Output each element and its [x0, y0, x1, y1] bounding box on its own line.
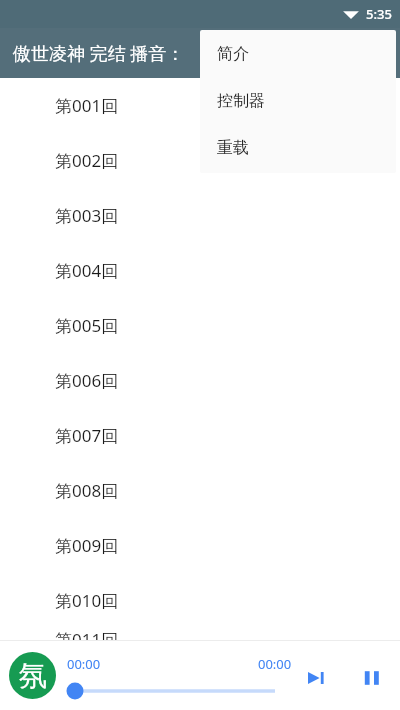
staticText: 第006回 — [55, 369, 119, 392]
button[interactable]: 第008回 — [0, 463, 400, 518]
button[interactable]: 第003回 — [0, 188, 400, 243]
button[interactable]: Next track — [296, 658, 336, 698]
button[interactable]: 简介 — [200, 30, 396, 77]
staticText: 第008回 — [55, 479, 119, 502]
staticText: 第005回 — [55, 314, 119, 337]
button[interactable]: 第001回 — [0, 78, 400, 133]
staticText: 控制器 — [217, 91, 265, 111]
button[interactable]: Pause — [352, 658, 392, 698]
button[interactable]: Seek bar — [67, 681, 275, 701]
button[interactable]: 第011回 — [0, 628, 400, 640]
staticText: 00:00 — [67, 655, 101, 673]
staticText: 第002回 — [55, 149, 119, 172]
button[interactable]: 第010回 — [0, 573, 400, 628]
button[interactable]: Album art — [9, 652, 56, 699]
staticText: 第001回 — [55, 94, 119, 117]
button[interactable]: 重载 — [200, 124, 396, 171]
button[interactable]: 第007回 — [0, 408, 400, 463]
staticText: 00:00 — [258, 655, 292, 673]
button[interactable]: 第009回 — [0, 518, 400, 573]
staticText: 第003回 — [55, 204, 119, 227]
staticText: 氛 — [19, 658, 47, 693]
staticText: 重载 — [217, 138, 249, 158]
staticText: 傲世凌神 完结 播音： — [13, 41, 185, 66]
button[interactable]: 第006回 — [0, 353, 400, 408]
staticText: 第009回 — [55, 534, 119, 557]
button[interactable]: 控制器 — [200, 77, 396, 124]
staticText: 第010回 — [55, 589, 119, 612]
staticText: 简介 — [217, 44, 249, 64]
staticText: 第011回 — [55, 628, 119, 640]
staticText: 5:35 — [366, 5, 392, 23]
button[interactable]: 第005回 — [0, 298, 400, 353]
button[interactable]: 第002回 — [0, 133, 400, 188]
staticText: 第004回 — [55, 259, 119, 282]
button[interactable]: 第004回 — [0, 243, 400, 298]
staticText: 第007回 — [55, 424, 119, 447]
